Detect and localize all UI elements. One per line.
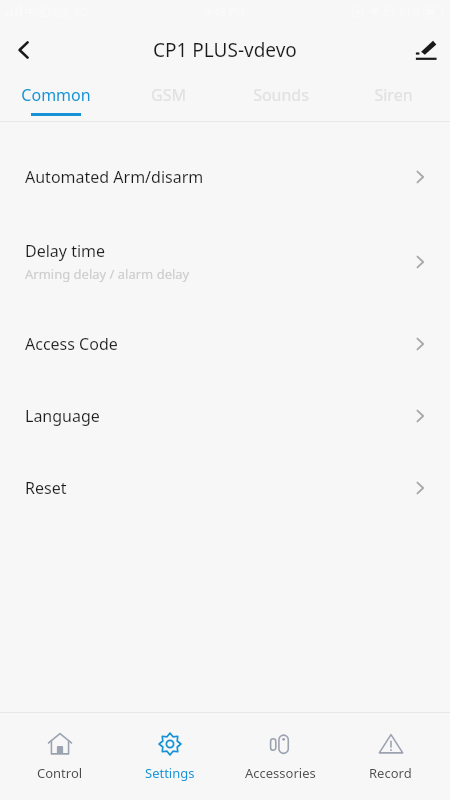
staticText: CP1 PLUS-vdevo xyxy=(153,37,297,63)
staticText: Delay time xyxy=(25,240,106,262)
button[interactable]: Edit xyxy=(402,26,450,74)
button[interactable]: Access Code xyxy=(0,283,450,355)
button[interactable]: Control xyxy=(10,731,110,782)
staticText: Access Code xyxy=(25,333,118,355)
staticText: Sounds xyxy=(253,84,309,106)
button[interactable]: Accessories xyxy=(230,731,330,782)
staticText: Accessories xyxy=(245,764,316,782)
button[interactable]: Reset xyxy=(0,427,450,499)
staticText: Automated Arm/disarm xyxy=(25,166,204,188)
button[interactable]: Automated Arm/disarm xyxy=(0,122,450,188)
staticText: Control xyxy=(37,764,83,782)
staticText: Arming delay / alarm delay xyxy=(25,265,190,283)
staticText: Record xyxy=(369,764,412,782)
button[interactable]: Back xyxy=(0,26,48,74)
button[interactable]: Sounds xyxy=(224,78,337,122)
button[interactable]: Language xyxy=(0,355,450,427)
staticText: Language xyxy=(25,405,100,427)
button[interactable]: Settings xyxy=(120,731,220,782)
staticText: Common xyxy=(21,84,91,106)
staticText: Reset xyxy=(25,477,67,499)
button[interactable]: Common xyxy=(0,78,112,122)
staticText: Siren xyxy=(374,84,413,106)
staticText: Settings xyxy=(145,764,195,782)
staticText: GSM xyxy=(151,84,186,106)
button[interactable]: Record xyxy=(340,731,440,782)
button[interactable]: GSM xyxy=(112,78,224,122)
button[interactable]: Delay time xyxy=(0,188,450,283)
button[interactable]: Siren xyxy=(337,78,450,122)
